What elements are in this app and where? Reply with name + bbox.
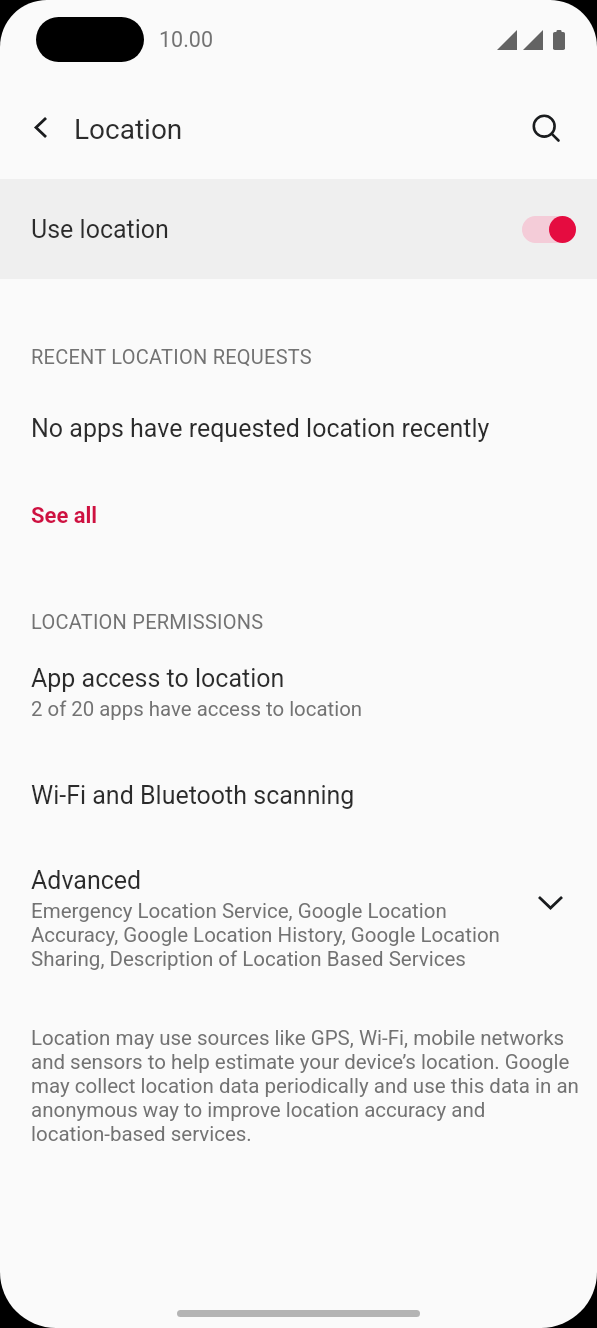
button[interactable]: Wi-Fi and Bluetooth scanning <box>0 759 597 832</box>
staticText: No apps have requested location recently <box>31 414 490 443</box>
button[interactable]: Use location <box>0 179 597 279</box>
staticText: Emergency Location Service, Google Locat… <box>31 899 511 971</box>
staticText: Wi-Fi and Bluetooth scanning <box>31 781 355 810</box>
staticText: RECENT LOCATION REQUESTS <box>31 345 312 368</box>
staticText: 10.00 <box>159 27 214 52</box>
staticText: Location may use sources like GPS, Wi-Fi… <box>31 1026 579 1146</box>
button[interactable]: See all <box>17 486 112 546</box>
staticText: LOCATION PERMISSIONS <box>31 610 264 633</box>
button[interactable]: Search <box>519 101 574 156</box>
staticText: Location <box>74 113 183 146</box>
staticText: Advanced <box>31 866 142 895</box>
button[interactable]: Back <box>13 100 68 155</box>
button[interactable]: App access to location <box>0 642 597 743</box>
staticText: Use location <box>31 215 169 244</box>
button[interactable]: Advanced <box>0 844 597 993</box>
staticText: 2 of 20 apps have access to location <box>31 697 363 721</box>
staticText: See all <box>31 503 98 529</box>
staticText: App access to location <box>31 664 285 693</box>
button[interactable]: Use location, on <box>522 216 576 243</box>
